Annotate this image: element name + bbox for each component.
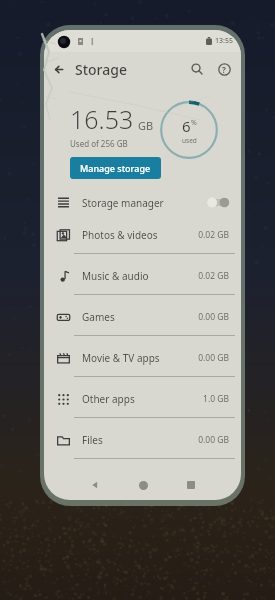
staticText: % [191, 118, 197, 128]
staticText: Music & audio [82, 269, 198, 283]
staticText: Files [82, 433, 198, 447]
staticText: Used of 256 GB [70, 138, 128, 149]
button[interactable]: Music & audio [44, 258, 241, 299]
staticText: 0.00 GB [198, 311, 229, 323]
staticText: Photos & videos [82, 228, 198, 242]
staticText: 0.00 GB [198, 352, 229, 364]
button[interactable]: Help [212, 57, 236, 81]
staticText: GB [138, 118, 154, 133]
staticText: Games [82, 310, 198, 324]
button[interactable]: Back [46, 56, 72, 82]
button[interactable]: Games [44, 299, 241, 340]
staticText: used [182, 136, 197, 145]
staticText: Storage [75, 60, 127, 79]
staticText: 0.00 GB [198, 434, 229, 446]
button[interactable]: Other apps [44, 381, 241, 422]
staticText: Other apps [82, 392, 203, 406]
button[interactable]: Home [119, 470, 167, 500]
button[interactable]: Back [70, 470, 119, 500]
staticText: Movie & TV apps [82, 351, 198, 365]
staticText: ? [222, 64, 226, 75]
button[interactable]: Storage manager [44, 188, 241, 217]
staticText: 0.02 GB [198, 229, 229, 241]
staticText: 1.0 GB [203, 393, 229, 405]
button[interactable]: Manage storage [70, 157, 161, 179]
staticText: 6 [182, 116, 191, 136]
staticText: Manage storage [80, 162, 151, 174]
button[interactable]: Movie & TV apps [44, 340, 241, 381]
staticText: 13:55 [215, 36, 233, 46]
staticText: 16.53 [70, 102, 134, 136]
button[interactable]: Search [185, 57, 209, 81]
button[interactable]: Files [44, 422, 241, 463]
button[interactable]: Recents [167, 470, 215, 500]
button[interactable]: Photos & videos [44, 217, 241, 258]
staticText: Storage manager [82, 196, 207, 210]
staticText: 0.02 GB [198, 270, 229, 282]
